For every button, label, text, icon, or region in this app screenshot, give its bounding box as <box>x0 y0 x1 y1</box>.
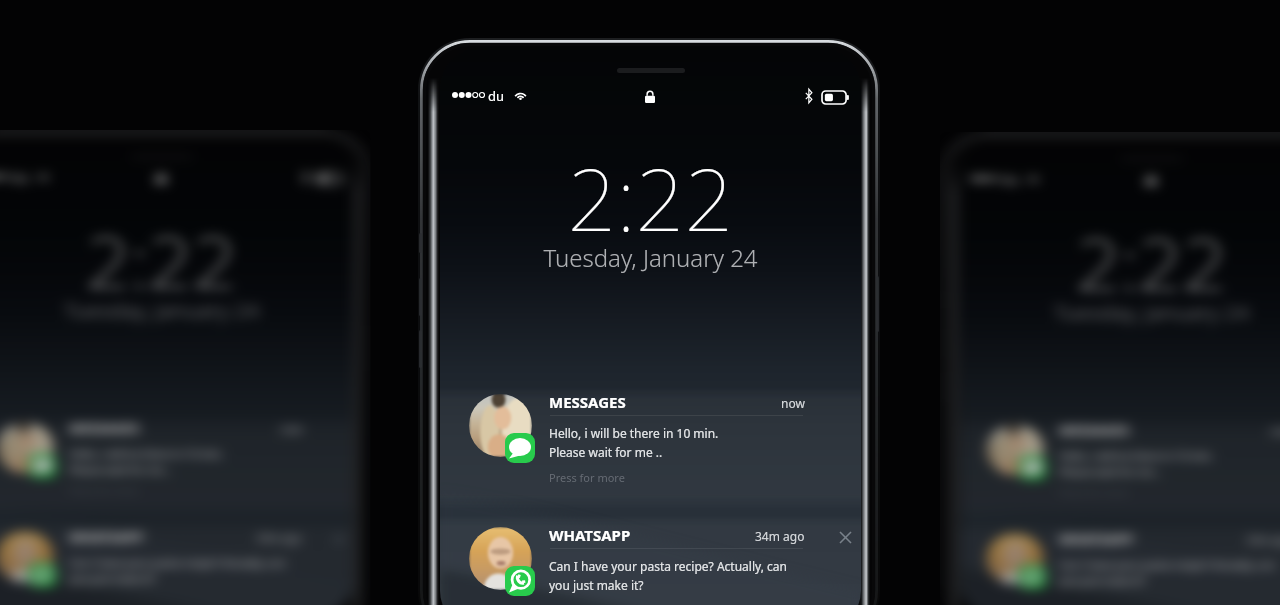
staticText: WHATSAPP <box>1059 531 1134 548</box>
staticText: Can I have your pasta recipe? Actually, … <box>1059 558 1276 571</box>
staticText: 34m ago <box>257 532 302 545</box>
staticText: Please wait for me .. <box>549 444 663 460</box>
staticText: Hello, i will be there in 10 min. <box>69 447 224 460</box>
button[interactable]: MESSAGES <box>0 422 353 512</box>
staticText: Tuesday, January 24 <box>440 241 861 274</box>
staticText: now <box>1270 425 1280 438</box>
staticText: 2:22 <box>0 213 353 309</box>
button[interactable]: WHATSAPP <box>440 527 861 605</box>
staticText: Please wait for me .. <box>1059 465 1163 478</box>
staticText: Tuesday, January 24 <box>960 298 1280 326</box>
button[interactable]: MESSAGES <box>440 394 861 504</box>
staticText: MESSAGES <box>549 392 626 412</box>
staticText: Can I have your pasta recipe? Actually, … <box>549 558 787 574</box>
staticText: WHATSAPP <box>549 525 631 545</box>
button[interactable]: WHATSAPP <box>960 533 1280 605</box>
staticText: Hello, i will be there in 10 min. <box>549 425 719 441</box>
button[interactable]: WHATSAPP <box>0 531 353 605</box>
staticText: 2:22 <box>960 215 1280 311</box>
staticText: du <box>14 170 29 185</box>
staticText: Tuesday, January 24 <box>0 296 353 324</box>
staticText: Can I have your pasta recipe? Actually, … <box>69 556 286 569</box>
staticText: 34m ago <box>755 528 805 544</box>
staticText: MESSAGES <box>1059 422 1129 439</box>
staticText: Hello, i will be there in 10 min. <box>1059 449 1214 462</box>
staticText: 34m ago <box>1247 534 1280 547</box>
staticText: du <box>488 87 505 105</box>
staticText: now <box>280 423 302 436</box>
button[interactable]: Dismiss notification <box>834 526 856 548</box>
staticText: MESSAGES <box>69 420 139 437</box>
staticText: 2:22 <box>440 139 861 256</box>
staticText: WHATSAPP <box>69 529 144 546</box>
staticText: Press for more <box>549 470 625 485</box>
staticText: du <box>1004 172 1019 187</box>
button[interactable]: MESSAGES <box>960 424 1280 514</box>
staticText: you just make it? <box>549 577 644 593</box>
staticText: Please wait for me .. <box>69 463 173 476</box>
staticText: you just make it? <box>69 572 156 585</box>
staticText: now <box>781 395 805 411</box>
staticText: you just make it? <box>1059 574 1146 587</box>
